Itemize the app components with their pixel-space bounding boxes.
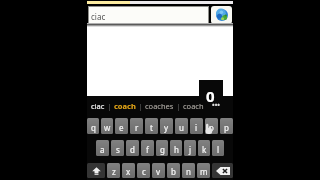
- button[interactable]: h: [170, 140, 182, 156]
- button[interactable]: z: [107, 163, 120, 178]
- staticText: a: [100, 144, 105, 155]
- staticText: c: [142, 166, 146, 177]
- staticText: p: [224, 122, 229, 133]
- staticText: u: [179, 122, 184, 133]
- button[interactable]: a: [96, 140, 109, 156]
- staticText: coach: [183, 101, 204, 111]
- button[interactable]: v: [152, 163, 165, 178]
- staticText: ciac: [91, 101, 105, 111]
- staticText: g: [160, 144, 165, 155]
- button[interactable]: r: [130, 118, 143, 134]
- staticText: coach: [114, 101, 136, 111]
- button[interactable]: Backspace: [212, 163, 233, 178]
- staticText: l: [217, 144, 220, 155]
- button[interactable]: x: [122, 163, 135, 178]
- button[interactable]: j: [184, 140, 196, 156]
- button[interactable]: i: [190, 118, 203, 134]
- button[interactable]: n: [182, 163, 195, 178]
- staticText: n: [186, 166, 191, 177]
- button[interactable]: d: [126, 140, 139, 156]
- staticText: i: [195, 122, 198, 133]
- button[interactable]: y: [160, 118, 173, 134]
- button[interactable]: p: [220, 118, 233, 134]
- staticText: r: [135, 122, 139, 133]
- button[interactable]: l: [212, 140, 224, 156]
- button[interactable]: ciac: [89, 7, 208, 24]
- staticText: e: [119, 122, 124, 133]
- button[interactable]: Shift: [87, 163, 105, 178]
- staticText: q: [91, 122, 96, 133]
- staticText: b: [171, 166, 176, 177]
- staticText: v: [156, 166, 161, 177]
- button[interactable]: q: [87, 118, 99, 134]
- staticText: x: [126, 166, 131, 177]
- button[interactable]: g: [156, 140, 168, 156]
- staticText: z: [112, 166, 116, 177]
- staticText: k: [202, 144, 207, 155]
- staticText: d: [130, 144, 135, 155]
- staticText: h: [174, 144, 179, 155]
- staticText: 0: [206, 86, 215, 106]
- staticText: w: [104, 122, 111, 133]
- staticText: t: [150, 122, 153, 133]
- staticText: j: [189, 144, 192, 155]
- button[interactable]: k: [198, 140, 210, 156]
- button[interactable]: f: [141, 140, 154, 156]
- staticText: f: [146, 144, 149, 155]
- button[interactable]: coach: [183, 96, 204, 118]
- button[interactable]: w: [101, 118, 113, 134]
- staticText: •••: [212, 101, 220, 111]
- staticText: y: [164, 122, 169, 133]
- button[interactable]: c: [137, 163, 150, 178]
- button[interactable]: e: [115, 118, 128, 134]
- button[interactable]: s: [111, 140, 124, 156]
- button[interactable]: coach: [114, 96, 136, 118]
- button[interactable]: coaches: [145, 96, 174, 118]
- button[interactable]: o: [205, 118, 218, 134]
- button[interactable]: u: [175, 118, 188, 134]
- button[interactable]: b: [167, 163, 180, 178]
- button[interactable]: ciac: [91, 96, 105, 118]
- staticText: ciac: [91, 11, 106, 22]
- staticText: s: [116, 144, 120, 155]
- staticText: coaches: [145, 101, 174, 111]
- staticText: m: [200, 166, 208, 177]
- button[interactable]: Open browser: [211, 6, 232, 24]
- button[interactable]: t: [145, 118, 158, 134]
- button[interactable]: m: [197, 163, 210, 178]
- staticText: o: [209, 122, 214, 133]
